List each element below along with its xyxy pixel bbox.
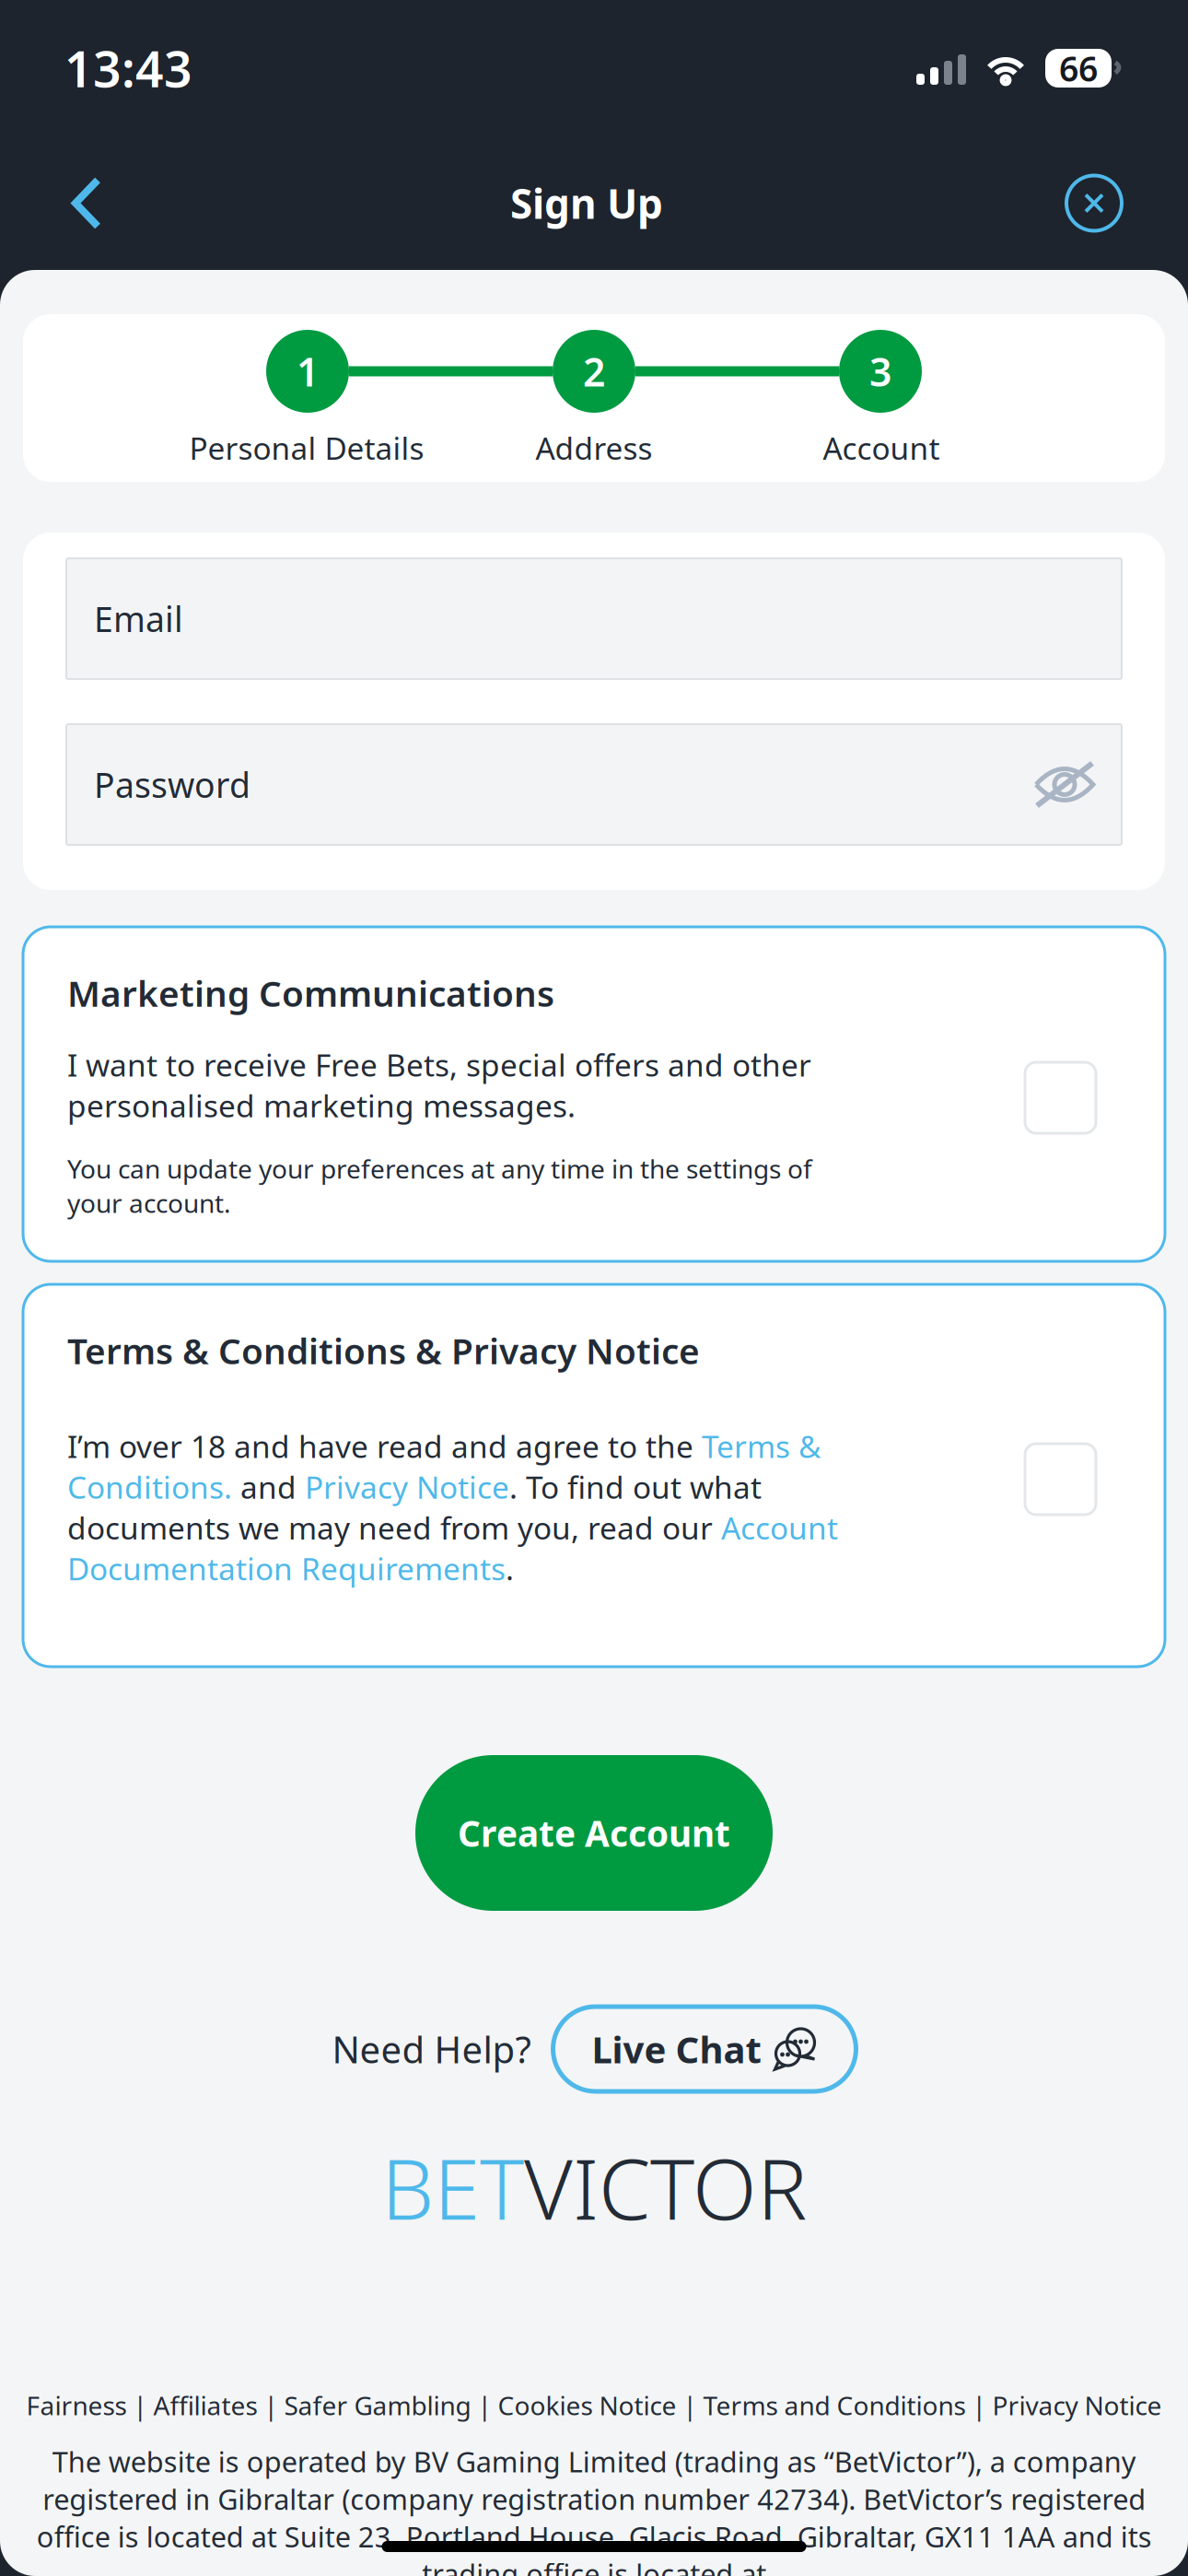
staticText: Address [536,427,652,468]
staticText: 1 [297,345,319,397]
staticText: Fairness | Affiliates | Safer Gambling |… [26,2388,1162,2422]
staticText: Terms & Conditions & Privacy Notice [67,1327,700,1374]
staticText: I want to receive Free Bets, special off… [67,1044,811,1126]
button[interactable]: Back [44,156,129,250]
button[interactable]: Create Account [415,1755,773,1911]
button[interactable]: Accept terms and conditions [1025,1444,1096,1515]
staticText: Personal Details [189,427,424,468]
staticText: The website is operated by BV Gaming Lim… [36,2443,1152,2576]
staticText: You can update your preferences at any t… [67,1152,812,1220]
staticText: I’m over 18 and have read and agree to t… [67,1426,838,1589]
button[interactable]: Live Chat [553,2007,856,2091]
staticText: VICTOR [524,2132,807,2243]
staticText: Marketing Communications [67,969,554,1016]
staticText: Email [94,596,183,642]
staticText: Account [823,427,940,468]
staticText: Sign Up [510,176,663,230]
staticText: Live Chat [592,2025,761,2073]
button[interactable]: Marketing communications opt in [1025,1062,1096,1133]
staticText: 66 [1059,45,1098,91]
button[interactable]: Close [1044,157,1144,249]
staticText: Create Account [458,1809,730,1857]
staticText: 13:43 [64,36,192,101]
staticText: Password [94,762,250,807]
staticText: 2 [583,345,605,397]
staticText: Need Help? [332,2025,531,2073]
staticText: 3 [869,345,891,397]
staticText: BET [381,2132,524,2243]
